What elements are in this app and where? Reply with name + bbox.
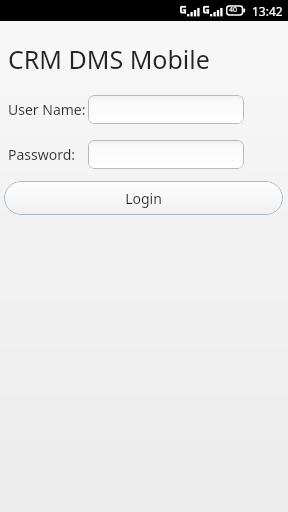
staticText: 40 (229, 5, 238, 15)
staticText: Password: (8, 145, 76, 164)
staticText: 13:42 (252, 3, 283, 19)
staticText: CRM DMS Mobile (8, 42, 210, 76)
staticText: Login (125, 189, 162, 208)
staticText: User Name: (8, 100, 86, 119)
button[interactable]: Password input (88, 140, 244, 169)
button[interactable]: Login (4, 181, 283, 215)
button[interactable]: User Name input (88, 95, 244, 124)
